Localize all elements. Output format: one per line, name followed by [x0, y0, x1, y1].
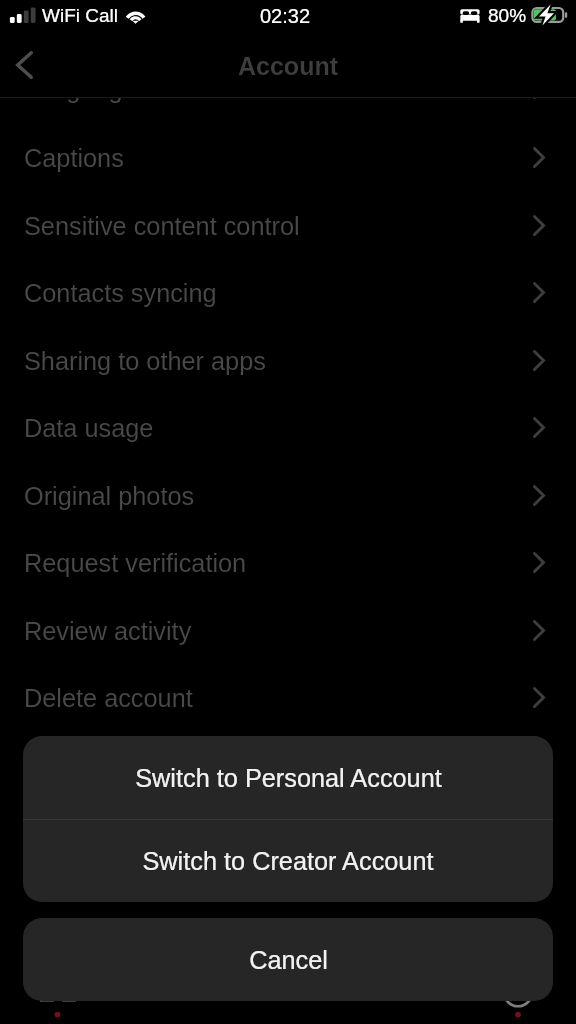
button[interactable]: Switch to Personal Account — [23, 736, 553, 819]
staticText: Sharing to other apps — [24, 347, 266, 375]
button[interactable]: Captions — [0, 124, 576, 192]
staticText: Request verification — [24, 549, 247, 577]
button[interactable]: Reels — [372, 954, 434, 1016]
button[interactable]: Create — [257, 954, 319, 1016]
staticText: Review activity — [24, 617, 192, 645]
staticText: WiFi Call — [42, 5, 118, 26]
staticText: Switch to Creator Account — [142, 847, 434, 875]
button[interactable]: Home — [27, 954, 89, 1016]
staticText: Delete account — [24, 684, 193, 712]
staticText: 80% — [488, 5, 527, 26]
staticText: Original photos — [24, 482, 195, 510]
staticText: Captions — [24, 144, 124, 172]
staticText: Account — [238, 52, 338, 80]
button[interactable]: Back — [0, 41, 48, 89]
button[interactable]: Delete account — [0, 664, 576, 732]
button[interactable]: Data usage — [0, 394, 576, 462]
button[interactable]: Review activity — [0, 597, 576, 665]
button[interactable]: Original photos — [0, 462, 576, 530]
button[interactable]: Language — [0, 55, 576, 123]
staticText: Switch to Personal Account — [135, 764, 442, 792]
button[interactable]: Search — [142, 954, 204, 1016]
staticText: 02:32 — [260, 5, 311, 27]
button[interactable]: Contacts syncing — [0, 259, 576, 327]
button[interactable]: Sharing to other apps — [0, 327, 576, 395]
staticText: Cancel — [249, 946, 328, 974]
staticText: Sensitive content control — [24, 212, 300, 240]
button[interactable]: Request verification — [0, 529, 576, 597]
staticText: Data usage — [24, 414, 154, 442]
staticText: Language — [24, 75, 137, 103]
staticText: Contacts syncing — [24, 279, 217, 307]
button[interactable]: Switch to Creator Account — [23, 820, 553, 902]
button[interactable]: Sensitive content control — [0, 192, 576, 260]
button[interactable]: Profile — [487, 954, 549, 1016]
button[interactable]: Cancel — [23, 918, 553, 1001]
